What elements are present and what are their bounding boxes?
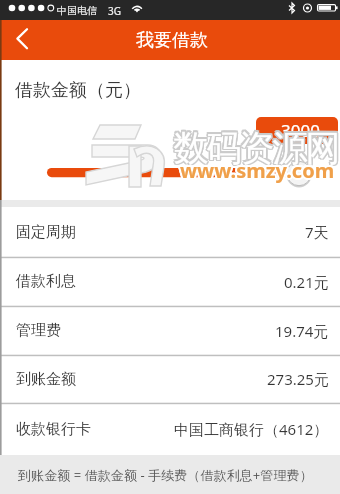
- staticText: 19.74元: [275, 321, 329, 341]
- staticText: 我要借款: [136, 29, 208, 52]
- staticText: 中国电信: [57, 4, 97, 17]
- button[interactable]: 到账金额: [0, 355, 340, 403]
- staticText: 固定周期: [16, 223, 76, 242]
- button[interactable]: Back: [0, 20, 44, 60]
- button[interactable]: 管理费: [0, 306, 340, 355]
- staticText: 管理费: [16, 321, 61, 340]
- staticText: 到账金额 = 借款金额 - 手续费（借款利息+管理费）: [18, 466, 313, 484]
- staticText: 收款银行卡: [16, 420, 91, 439]
- staticText: 3000: [281, 119, 320, 142]
- staticText: 借款金额（元）: [15, 79, 141, 102]
- staticText: 到账金额: [16, 370, 76, 389]
- staticText: 3G: [108, 4, 121, 18]
- staticText: 借款利息: [16, 272, 76, 291]
- button[interactable]: 固定周期: [0, 207, 340, 257]
- staticText: 0.21元: [284, 272, 329, 292]
- staticText: 273.25元: [267, 369, 329, 389]
- button[interactable]: 收款银行卡: [0, 403, 340, 455]
- button[interactable]: 借款利息: [0, 257, 340, 306]
- staticText: 中国工商银行（4612）: [174, 419, 329, 439]
- staticText: 7天: [305, 222, 329, 242]
- button[interactable]: 3000: [256, 117, 338, 144]
